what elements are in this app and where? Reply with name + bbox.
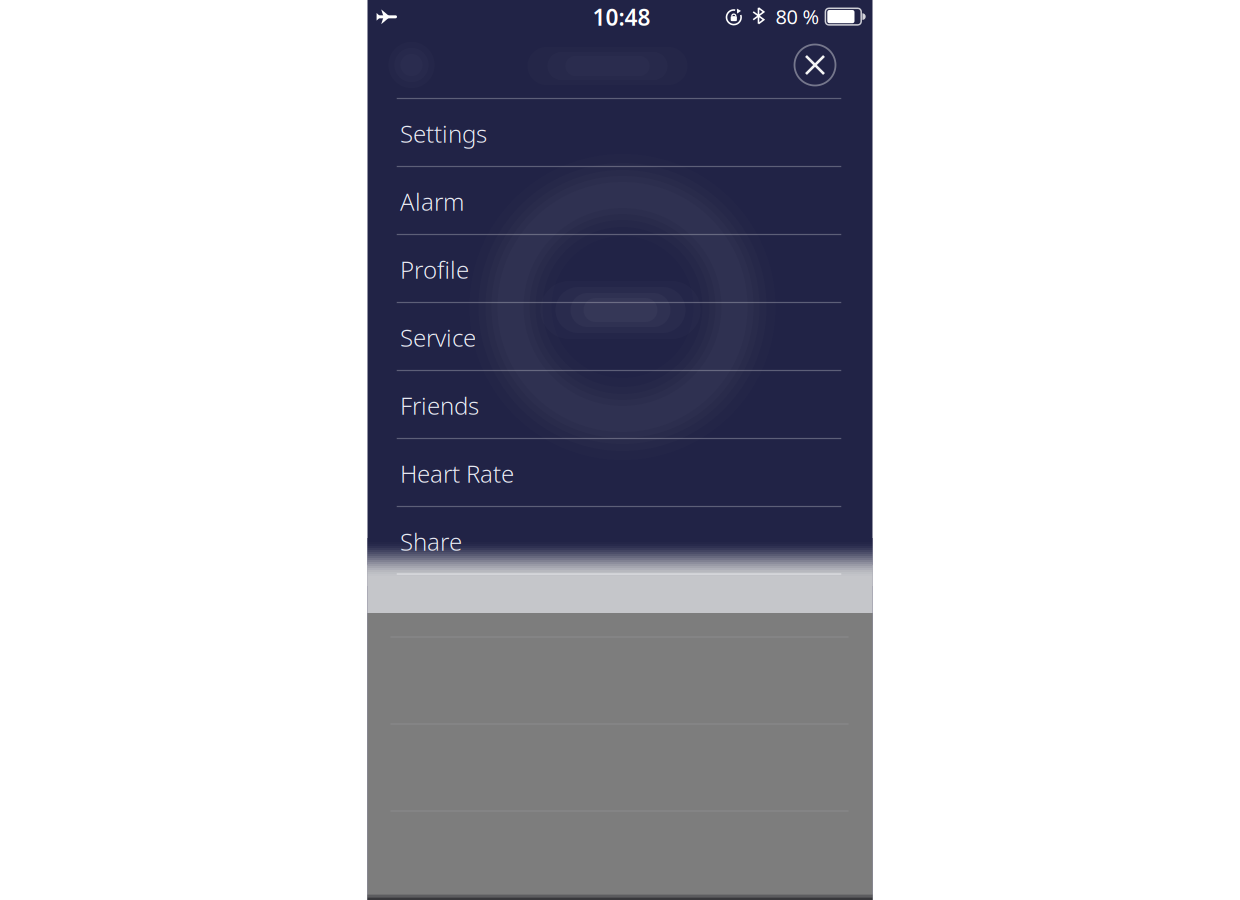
staticText: Alarm [400, 186, 464, 217]
button[interactable]: Alarm [367, 167, 872, 235]
staticText: Share [400, 526, 462, 557]
staticText: 10:48 [592, 2, 650, 32]
button[interactable]: Heart Rate [367, 439, 872, 507]
button[interactable]: Service [367, 303, 872, 371]
staticText: 80 % [775, 3, 819, 30]
button[interactable]: Friends [367, 371, 872, 439]
staticText: Friends [400, 390, 479, 421]
staticText: Settings [400, 118, 487, 149]
staticText: Service [400, 322, 476, 353]
button[interactable]: Settings [367, 99, 872, 167]
button[interactable]: Share [367, 507, 872, 575]
staticText: Profile [400, 254, 469, 285]
staticText: Heart Rate [400, 458, 514, 489]
button[interactable]: Close [794, 44, 835, 85]
button[interactable]: Profile [367, 235, 872, 303]
